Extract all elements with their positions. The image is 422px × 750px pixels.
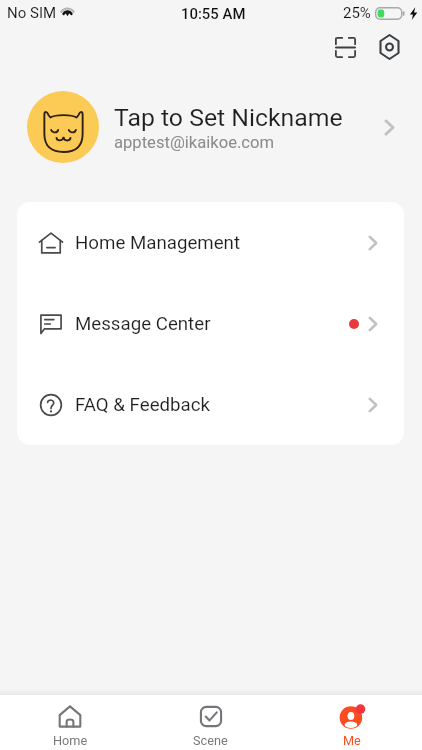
staticText: Tap to Set Nickname	[114, 103, 343, 132]
staticText: apptest@ikaikoe.com	[114, 133, 275, 152]
staticText: Message Center	[75, 313, 211, 335]
button[interactable]: Tap to Set Nickname	[0, 91, 422, 163]
button[interactable]: Home Management	[17, 202, 404, 283]
staticText: No SIM	[7, 4, 57, 22]
staticText: FAQ & Feedback	[75, 394, 211, 416]
staticText: Home Management	[75, 232, 241, 254]
button[interactable]: FAQ & Feedback	[17, 364, 404, 445]
staticText: Scene	[193, 733, 228, 748]
button[interactable]: Home	[0, 702, 140, 750]
staticText: 10:55 AM	[181, 5, 246, 22]
button[interactable]: Me	[281, 702, 422, 750]
button[interactable]: Settings	[367, 25, 411, 69]
button[interactable]: Scene	[140, 702, 281, 750]
button[interactable]: Scan	[323, 25, 367, 69]
staticText: 25%	[343, 4, 371, 22]
button[interactable]: Message Center	[17, 283, 404, 364]
staticText: Home	[53, 733, 88, 748]
staticText: Me	[343, 733, 361, 748]
